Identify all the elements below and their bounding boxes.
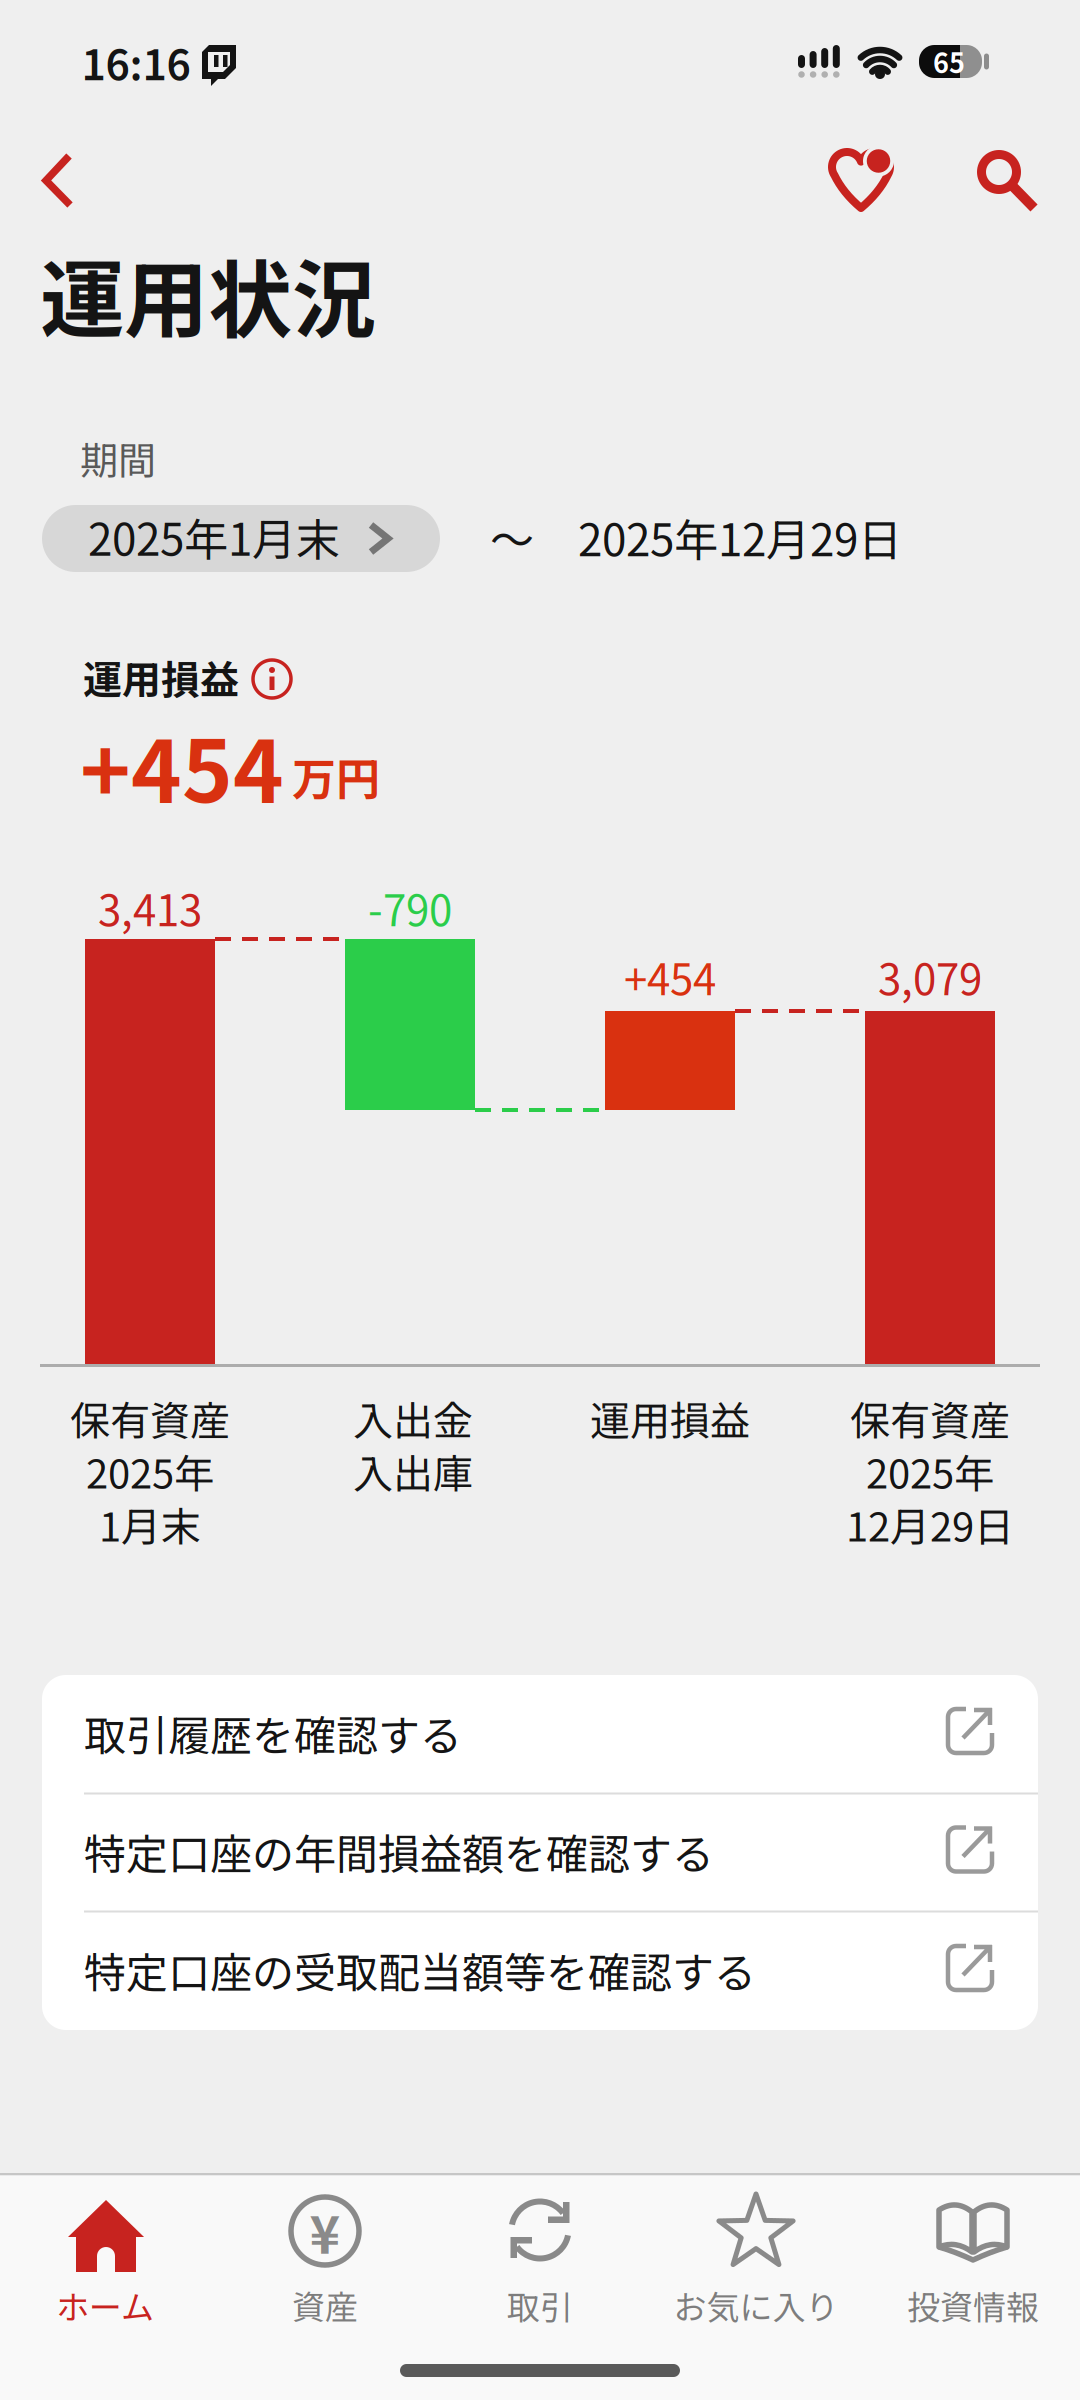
staticText: 特定口座の受取配当額等を確認する — [84, 1940, 756, 2000]
staticText: 運用状況 — [40, 233, 376, 355]
button[interactable]: ホーム — [0, 2170, 210, 2360]
staticText: 資産 — [292, 2281, 358, 2329]
staticText: 2025年 — [86, 1442, 214, 1500]
button[interactable]: Search — [955, 125, 1055, 235]
button[interactable]: お気に入り — [651, 2170, 861, 2360]
staticText: 入出庫 — [353, 1442, 473, 1500]
staticText: 3,079 — [878, 947, 982, 1007]
button[interactable]: 資産 — [220, 2170, 430, 2360]
staticText: 保有資産 — [70, 1389, 230, 1447]
staticText: 取引 — [507, 2281, 573, 2329]
staticText: 2025年12月29日 — [578, 505, 902, 569]
staticText: 2025年 — [866, 1442, 994, 1500]
staticText: ホーム — [56, 2281, 154, 2329]
button[interactable]: 2025年1月末 — [42, 505, 440, 572]
staticText: 入出金 — [353, 1389, 473, 1447]
staticText: お気に入り — [673, 2281, 838, 2329]
button[interactable]: 特定口座の年間損益額を確認する — [42, 1794, 1038, 1908]
staticText: 〜 — [490, 505, 534, 569]
staticText: 3,413 — [98, 878, 202, 938]
staticText: 運用損益 — [590, 1389, 750, 1447]
button[interactable]: 特定口座の受取配当額等を確認する — [42, 1913, 1038, 2027]
button[interactable]: 取引履歴を確認する — [42, 1676, 1038, 1790]
staticText: 2025年1月末 — [88, 505, 340, 568]
staticText: +454 — [624, 947, 716, 1007]
staticText: 運用損益 — [83, 649, 239, 705]
button[interactable]: Back — [23, 135, 93, 225]
staticText: 1月末 — [99, 1495, 201, 1553]
staticText: 万円 — [292, 744, 380, 808]
button[interactable]: 取引 — [435, 2170, 645, 2360]
button[interactable]: Info — [242, 649, 302, 709]
button[interactable]: Favorites — [806, 120, 926, 240]
staticText: -790 — [368, 878, 452, 938]
staticText: 12月29日 — [846, 1495, 1014, 1553]
staticText: 特定口座の年間損益額を確認する — [84, 1821, 714, 1882]
staticText: 保有資産 — [850, 1389, 1010, 1447]
staticText: 16:16 — [81, 32, 190, 92]
staticText: 期間 — [80, 430, 156, 485]
button[interactable]: 投資情報 — [868, 2170, 1078, 2360]
staticText: 投資情報 — [907, 2281, 1039, 2329]
staticText: 取引履歴を確認する — [84, 1703, 462, 1763]
staticText: +454 — [80, 703, 284, 827]
staticText: ¥ — [309, 2193, 340, 2269]
staticText: 65 — [933, 42, 965, 81]
